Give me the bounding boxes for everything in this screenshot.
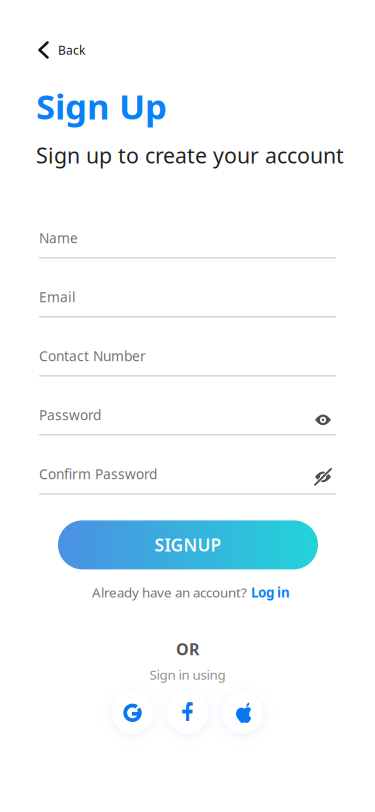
button[interactable]: Back	[38, 38, 128, 62]
staticText: Email	[39, 287, 76, 306]
staticText: Already have an account?	[92, 583, 247, 601]
staticText: Name	[39, 228, 78, 247]
staticText: OR	[176, 638, 199, 660]
staticText: Contact Number	[39, 346, 146, 365]
staticText: Back	[58, 42, 85, 58]
button[interactable]: SIGNUP	[58, 520, 318, 569]
staticText: Password	[39, 405, 101, 424]
staticText: Sign Up	[36, 83, 167, 129]
button[interactable]: Sign in with Facebook	[167, 692, 208, 733]
staticText: Log in	[251, 583, 290, 601]
staticText: Sign in using	[149, 666, 225, 683]
button[interactable]: Sign in with Apple	[222, 692, 263, 733]
button[interactable]: Already have an account?	[92, 583, 290, 601]
staticText: Sign up to create your account	[36, 141, 344, 169]
button[interactable]: Sign in with Google	[112, 692, 153, 733]
staticText: Confirm Password	[39, 464, 157, 483]
staticText: SIGNUP	[154, 533, 221, 556]
